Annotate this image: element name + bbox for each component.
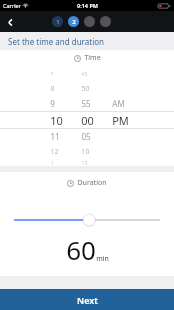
staticText: 15 [81,159,88,166]
staticText: 05 [81,131,91,142]
staticText: Time [84,53,101,63]
button[interactable]: 11 [0,129,174,144]
button[interactable]: 9 [0,96,174,111]
staticText: 8 [50,84,55,94]
staticText: 9 [50,98,55,109]
button[interactable]: 12 [0,144,174,159]
staticText: 11 [50,131,60,142]
staticText: 45 [81,70,88,77]
staticText: Duration [77,178,107,188]
staticText: 7 [50,70,54,77]
staticText: 2 [72,18,76,26]
button[interactable]: Next [0,289,174,310]
staticText: Next [77,294,98,306]
button[interactable]: 8 [0,81,174,96]
staticText: min [96,254,109,264]
staticText: PM [112,113,129,128]
staticText: Set the time and duration [8,36,104,47]
button[interactable]: Step [100,16,111,27]
button[interactable]: Duration slider [0,212,174,228]
staticText: 00 [81,113,94,128]
button[interactable]: Back [0,12,20,32]
button[interactable]: 10 [0,111,174,129]
button[interactable]: Step [84,16,95,27]
staticText: Carrier [3,2,21,9]
staticText: 60 [66,232,96,267]
staticText: 1 [56,18,60,26]
button[interactable]: Step 2 [68,16,79,27]
staticText: 10 [81,147,90,157]
staticText: 50 [81,84,90,94]
staticText: 9:14 PM [77,2,98,9]
staticText: 10 [50,113,63,128]
staticText: 55 [81,98,91,109]
staticText: AM [112,98,125,109]
button[interactable]: Step 1 [52,16,63,27]
staticText: 1 [50,159,54,166]
staticText: 12 [50,147,59,157]
